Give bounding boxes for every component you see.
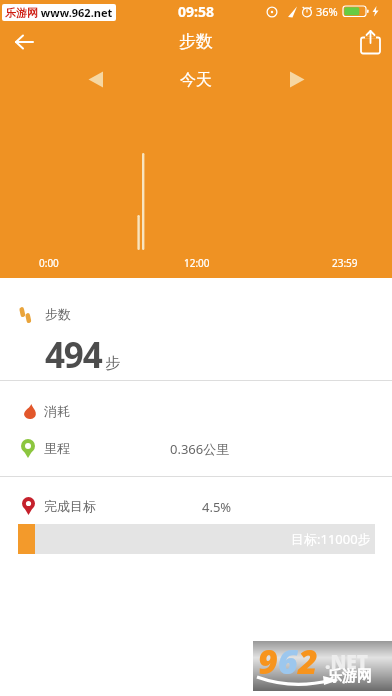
staticText: 6 bbox=[278, 638, 298, 684]
staticText: 4.5% bbox=[202, 498, 232, 516]
staticText: 0.366公里 bbox=[170, 440, 230, 458]
staticText: 步 bbox=[105, 354, 120, 373]
staticText: 0:00 bbox=[39, 256, 59, 270]
staticText: 步数 bbox=[45, 306, 71, 322]
staticText: 12:00 bbox=[184, 256, 210, 270]
staticText: 今天 bbox=[180, 70, 212, 90]
button[interactable] bbox=[352, 26, 388, 58]
button[interactable] bbox=[280, 64, 314, 94]
staticText: 乐游网 bbox=[327, 667, 372, 686]
staticText: 494 bbox=[45, 331, 102, 379]
staticText: 23:59 bbox=[332, 256, 358, 270]
button[interactable] bbox=[78, 64, 112, 94]
staticText: 消耗 bbox=[44, 403, 70, 419]
staticText: 目标:11000步 bbox=[291, 530, 371, 548]
staticText: 2 bbox=[298, 638, 318, 684]
staticText: 9 bbox=[258, 638, 278, 684]
staticText: 09:58 bbox=[178, 2, 214, 21]
staticText: 乐游网 bbox=[5, 6, 38, 20]
staticText: 步数 bbox=[179, 31, 213, 52]
staticText: 36% bbox=[316, 4, 338, 19]
staticText: 里程 bbox=[44, 440, 70, 456]
staticText: 完成目标 bbox=[44, 498, 96, 514]
button[interactable] bbox=[6, 28, 42, 56]
staticText: www.962.net bbox=[38, 5, 113, 20]
staticText: .NET bbox=[325, 649, 368, 675]
